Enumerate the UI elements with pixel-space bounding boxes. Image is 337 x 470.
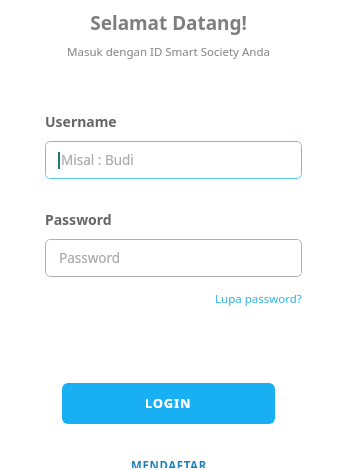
staticText: Selamat Datang! [0, 10, 337, 36]
button[interactable]: MENDAFTAR [123, 456, 215, 470]
staticText: MENDAFTAR [131, 458, 207, 468]
button[interactable]: LOGIN [62, 383, 275, 424]
staticText: Username [45, 112, 117, 131]
staticText: Password [59, 249, 121, 267]
staticText: Password [45, 210, 112, 229]
button[interactable]: Misal : Budi [45, 141, 302, 179]
staticText: LOGIN [145, 395, 192, 412]
button[interactable]: Password [45, 239, 302, 277]
button[interactable]: Lupa password? [215, 291, 302, 307]
staticText: Masuk dengan ID Smart Society Anda [0, 44, 337, 60]
staticText: Lupa password? [215, 291, 302, 307]
staticText: Misal : Budi [61, 151, 134, 169]
